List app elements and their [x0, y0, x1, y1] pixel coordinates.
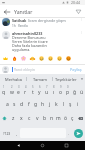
button[interactable]: x — [17, 111, 25, 125]
staticText: Merhaba — [5, 77, 22, 82]
staticText: ç — [71, 115, 74, 122]
staticText: 5 — [32, 85, 34, 89]
button[interactable]: Backspace — [76, 111, 85, 125]
button[interactable]: 7 — [43, 84, 50, 97]
staticText: a — [6, 101, 9, 108]
button[interactable]: Paylaş — [69, 66, 83, 73]
button[interactable]: Emoji reaction — [37, 54, 46, 63]
staticText: Yanıtlar — [14, 8, 33, 15]
button[interactable]: l — [60, 97, 67, 111]
button[interactable]: 8 — [50, 84, 57, 97]
button[interactable]: c — [25, 111, 33, 125]
button[interactable]: 2 — [8, 84, 15, 97]
staticText: c — [28, 115, 31, 122]
staticText: g — [34, 101, 38, 108]
staticText: ?123 — [3, 131, 11, 136]
button[interactable]: 6 — [36, 84, 43, 97]
staticText: q — [2, 89, 6, 96]
button[interactable]: m — [55, 111, 62, 125]
button[interactable]: Send — [73, 6, 84, 17]
button[interactable]: ü — [78, 84, 85, 97]
staticText: ı — [53, 89, 55, 96]
button[interactable]: g — [32, 97, 39, 111]
staticText: 1h — [12, 24, 16, 28]
staticText: e — [17, 89, 20, 96]
button[interactable]: Home — [37, 141, 48, 150]
button[interactable]: More suggestions — [78, 74, 85, 84]
button[interactable]: Back — [1, 6, 12, 17]
button[interactable]: h — [39, 97, 46, 111]
button[interactable]: 4 — [22, 84, 29, 97]
button[interactable]: , — [14, 125, 20, 141]
button[interactable]: 1 — [0, 84, 8, 97]
button[interactable]: j — [46, 97, 53, 111]
staticText: i — [77, 101, 79, 108]
button[interactable]: Emoji reaction — [19, 54, 28, 63]
staticText: k — [55, 101, 58, 108]
button[interactable]: k — [53, 97, 60, 111]
button[interactable]: d — [18, 97, 25, 111]
button[interactable]: Profile photo — [2, 66, 9, 73]
button[interactable]: Emoji reaction — [55, 54, 64, 63]
button[interactable]: Send — [74, 129, 83, 138]
button[interactable]: ş — [67, 97, 74, 111]
button[interactable]: Profile photo — [2, 18, 10, 26]
staticText: z — [12, 115, 15, 122]
staticText: 7 — [46, 85, 48, 89]
button[interactable]: Back — [13, 141, 24, 150]
staticText: 8 — [53, 85, 55, 89]
button[interactable]: Emoji reaction — [46, 54, 55, 63]
button[interactable]: Emoji reaction — [28, 54, 37, 63]
button[interactable]: b — [41, 111, 48, 125]
staticText: 6 — [39, 85, 41, 89]
staticText: , — [16, 131, 18, 136]
button[interactable]: i — [74, 97, 81, 111]
staticText: j — [49, 101, 51, 108]
button[interactable]: 5 — [29, 84, 36, 97]
staticText: o — [59, 89, 63, 96]
staticText: 4 — [25, 85, 27, 89]
staticText: Teşekkürler — [55, 77, 77, 82]
button[interactable]: Teşekkürler — [53, 74, 78, 84]
button[interactable]: 0 — [64, 84, 71, 97]
button[interactable]: ğ — [71, 84, 78, 97]
button[interactable]: ç — [69, 111, 76, 125]
button[interactable]: z — [9, 111, 17, 125]
staticText: y — [38, 89, 41, 96]
staticText: b — [43, 115, 47, 122]
staticText: n — [50, 115, 54, 122]
button[interactable]: Emoji reaction — [10, 54, 19, 63]
button[interactable]: ö — [62, 111, 69, 125]
button[interactable]: Shift — [0, 111, 9, 125]
button[interactable]: a — [4, 97, 11, 111]
staticText: Yanıtla — [18, 24, 28, 28]
button[interactable]: Tamam — [27, 74, 52, 84]
staticText: s — [13, 101, 16, 108]
button[interactable]: f — [25, 97, 32, 111]
staticText: v — [36, 115, 39, 122]
staticText: . — [68, 131, 70, 136]
staticText: ğ — [73, 89, 77, 96]
staticText: p — [66, 89, 70, 96]
staticText: 1 — [3, 85, 5, 89]
button[interactable]: Recent apps — [61, 141, 72, 150]
button[interactable]: n — [48, 111, 55, 125]
staticText: 2 — [11, 85, 13, 89]
button[interactable]: Merhaba — [0, 74, 26, 84]
staticText: w — [10, 89, 14, 96]
button[interactable]: 3 — [15, 84, 22, 97]
staticText: 20:44 — [71, 0, 80, 5]
button[interactable]: Profile photo — [2, 31, 10, 39]
button[interactable]: s — [11, 97, 18, 111]
button[interactable]: 9 — [57, 84, 64, 97]
staticText: 9 — [60, 85, 62, 89]
button[interactable]: Emoji reaction — [1, 54, 10, 63]
button[interactable]: Emoji reaction — [64, 54, 73, 63]
staticText: ahmetsahin0233 Deneme Bonusunu Veren Sit… — [12, 31, 51, 52]
button[interactable]: v — [33, 111, 41, 125]
button[interactable]: ?123 — [0, 125, 14, 141]
